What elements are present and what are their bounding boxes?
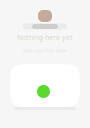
button[interactable]: Status xyxy=(10,64,80,107)
staticText: Add your first item xyxy=(23,47,67,54)
staticText: Nothing here yet xyxy=(17,33,73,42)
